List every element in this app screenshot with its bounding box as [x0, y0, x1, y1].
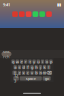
staticText: u: [37, 59, 39, 64]
staticText: i: [42, 59, 43, 64]
staticText: r: [25, 59, 27, 64]
button[interactable]: c: [26, 71, 29, 75]
button[interactable]: k: [43, 65, 46, 69]
button[interactable]: m: [43, 71, 46, 75]
button[interactable]: i: [41, 59, 44, 64]
button[interactable]: w: [16, 59, 19, 64]
staticText: p: [50, 59, 52, 64]
staticText: t: [29, 59, 30, 64]
button[interactable]: v: [30, 71, 34, 75]
button[interactable]: go: [43, 76, 51, 80]
button[interactable]: b: [34, 71, 38, 75]
button[interactable]: g: [30, 65, 34, 69]
button[interactable]: e: [20, 59, 23, 64]
button[interactable]: o: [45, 59, 48, 64]
staticText: 9:41: [3, 2, 10, 7]
staticText: ⇧: [13, 70, 16, 75]
staticText: search: [3, 49, 10, 59]
staticText: f: [27, 64, 28, 70]
staticText: o: [46, 59, 48, 64]
button[interactable]: r: [24, 59, 27, 64]
button[interactable]: ⌫: [47, 71, 51, 75]
button[interactable]: q: [11, 59, 15, 64]
staticText: w: [16, 59, 19, 64]
button[interactable]: t: [28, 59, 31, 64]
button[interactable]: a: [13, 65, 17, 69]
staticText: g: [31, 64, 33, 70]
staticText: 123: [14, 73, 18, 84]
button[interactable]: y: [32, 59, 36, 64]
button[interactable]: l: [47, 65, 50, 69]
staticText: space: [26, 76, 36, 81]
staticText: go: [45, 76, 49, 81]
button[interactable]: n: [39, 71, 42, 75]
button[interactable]: space: [20, 76, 42, 80]
button[interactable]: s: [18, 65, 21, 69]
staticText: b: [35, 70, 37, 75]
staticText: ▮▮: [57, 2, 61, 7]
staticText: q: [12, 59, 14, 64]
staticText: k: [44, 64, 46, 70]
button[interactable]: 123: [13, 76, 19, 80]
staticText: h: [35, 64, 37, 70]
staticText: s: [18, 64, 20, 70]
button[interactable]: u: [37, 59, 40, 64]
button[interactable]: z: [18, 71, 21, 75]
staticText: z: [18, 70, 20, 75]
button[interactable]: f: [26, 65, 29, 69]
button[interactable]: h: [34, 65, 38, 69]
button[interactable]: d: [22, 65, 25, 69]
button[interactable]: ⇧: [12, 71, 17, 75]
staticText: v: [31, 70, 33, 75]
staticText: j: [40, 64, 41, 70]
staticText: l: [48, 64, 49, 70]
staticText: n: [39, 70, 41, 75]
staticText: e: [20, 59, 22, 64]
button[interactable]: p: [49, 59, 52, 64]
staticText: a: [14, 64, 16, 70]
button[interactable]: j: [39, 65, 42, 69]
staticText: ⌫: [46, 70, 52, 75]
button[interactable]: x: [22, 71, 25, 75]
staticText: d: [23, 64, 25, 70]
staticText: m: [43, 70, 47, 75]
staticText: y: [33, 59, 35, 64]
staticText: c: [27, 70, 29, 75]
staticText: x: [23, 70, 25, 75]
